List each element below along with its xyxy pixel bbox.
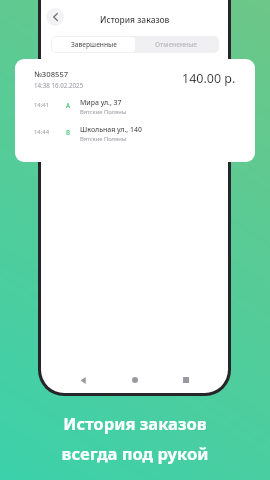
button[interactable]: Отмененные xyxy=(135,37,218,52)
staticText: B xyxy=(66,128,80,136)
button[interactable]: Recent apps xyxy=(176,370,196,390)
staticText: Отмененные xyxy=(155,40,198,49)
staticText: Школьная ул., 140 xyxy=(80,125,142,134)
staticText: История заказов xyxy=(100,14,170,25)
staticText: Завершенные xyxy=(71,40,117,49)
staticText: 140.00 р. xyxy=(182,70,236,87)
staticText: 14:38 16.02.2025 xyxy=(34,81,84,89)
button[interactable]: Home xyxy=(125,370,145,390)
staticText: История заказов xyxy=(36,412,234,435)
button[interactable]: Back xyxy=(73,370,93,390)
staticText: Вятские Поляны xyxy=(80,135,127,143)
staticText: Вятские Поляны xyxy=(80,108,127,116)
button[interactable]: №308557 xyxy=(15,59,255,162)
staticText: 14:41 xyxy=(34,101,66,109)
staticText: всегда под рукой xyxy=(36,442,234,465)
button[interactable]: Завершенные xyxy=(52,37,135,52)
staticText: №308557 xyxy=(34,69,69,79)
staticText: Мира ул., 37 xyxy=(80,98,122,107)
staticText: A xyxy=(66,101,80,109)
staticText: 14:44 xyxy=(34,128,66,136)
button[interactable]: Back xyxy=(46,8,64,26)
